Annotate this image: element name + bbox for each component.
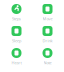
button[interactable]: Sleep bbox=[2, 26, 31, 48]
button[interactable]: Drink bbox=[33, 26, 62, 48]
staticText: Heart bbox=[11, 60, 21, 65]
staticText: Drink bbox=[42, 38, 52, 43]
button[interactable]: Steps bbox=[2, 4, 31, 26]
button[interactable]: Move bbox=[33, 4, 62, 26]
staticText: Steps bbox=[12, 16, 21, 21]
staticText: Note bbox=[43, 60, 51, 65]
staticText: Move bbox=[42, 16, 52, 21]
button[interactable]: Note bbox=[33, 48, 62, 70]
button[interactable]: Heart bbox=[2, 48, 31, 70]
staticText: Sleep bbox=[12, 38, 21, 43]
